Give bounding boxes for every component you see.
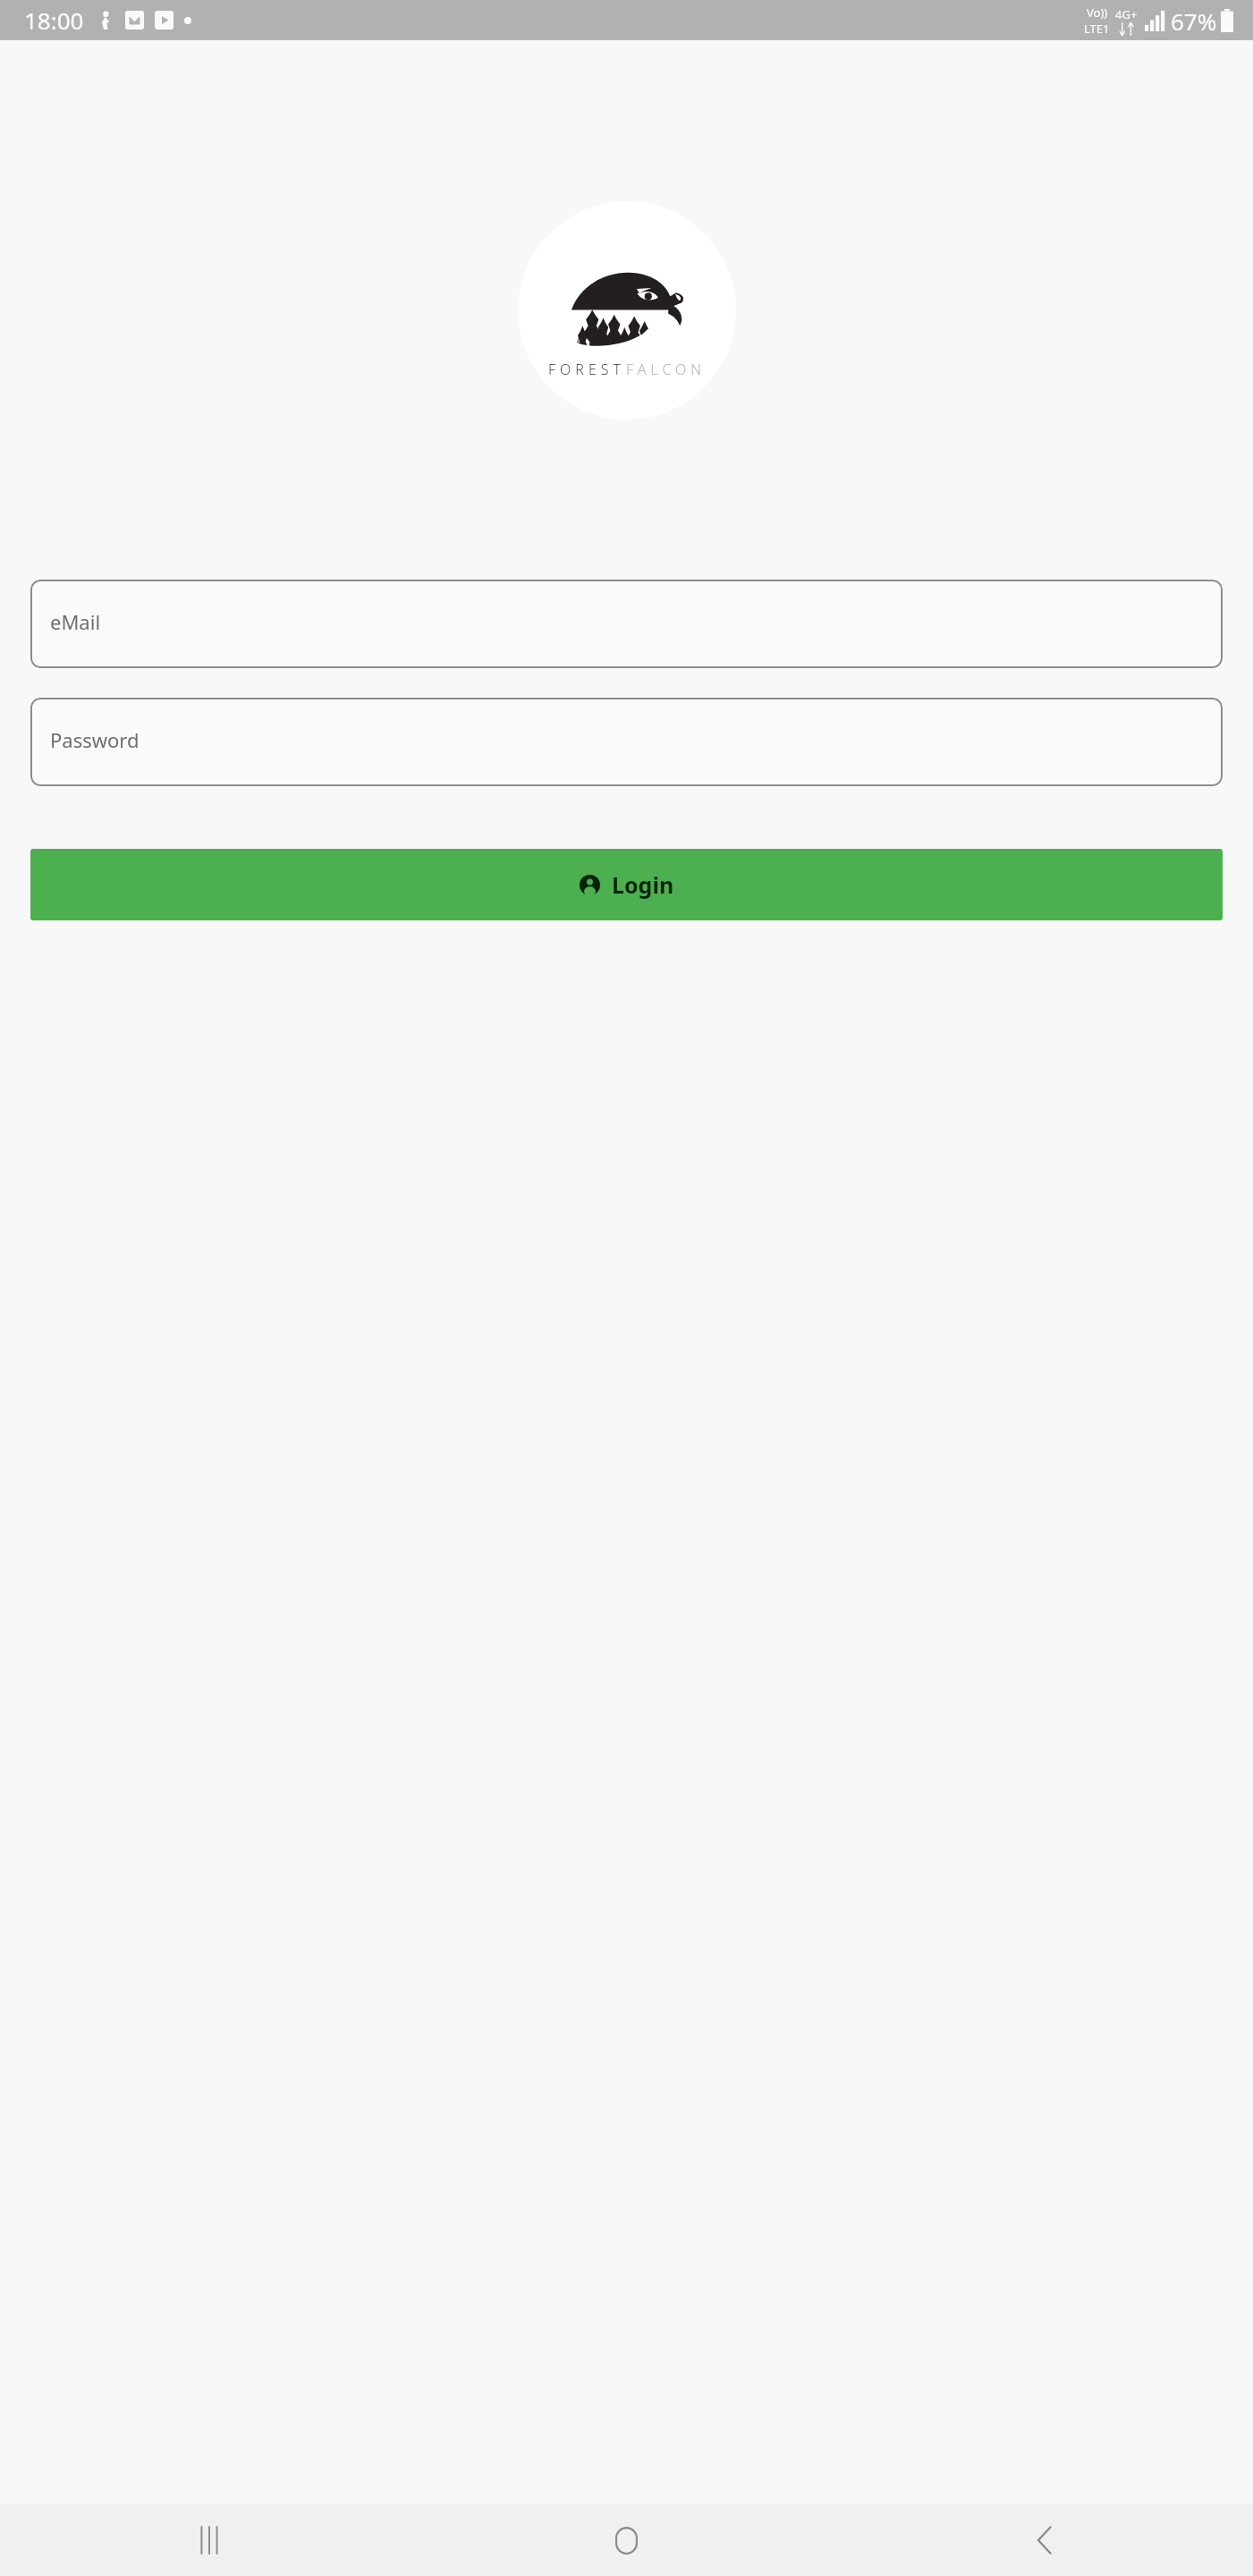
staticText: Password: [50, 726, 140, 753]
button[interactable]: Login: [30, 849, 1223, 920]
staticText: 4G+: [1115, 6, 1138, 22]
staticText: FOREST: [548, 360, 626, 379]
staticText: eMail: [50, 608, 101, 635]
staticText: 18:00: [24, 4, 84, 36]
staticText: LTE1: [1084, 21, 1110, 37]
staticText: Login: [612, 869, 674, 900]
button[interactable]: eMail: [30, 580, 1223, 668]
staticText: Vo)): [1087, 4, 1108, 21]
staticText: 67%: [1171, 5, 1217, 37]
button[interactable]: Back: [835, 2504, 1253, 2576]
button[interactable]: Home: [418, 2504, 835, 2576]
button[interactable]: Recent apps: [0, 2504, 418, 2576]
staticText: FALCON: [626, 360, 706, 379]
button[interactable]: Password: [30, 698, 1223, 786]
